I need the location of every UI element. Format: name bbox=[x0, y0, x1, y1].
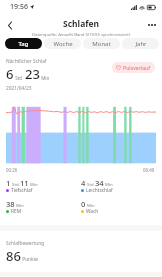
button[interactable]: Tag bbox=[5, 38, 42, 49]
staticText: 38 bbox=[6, 199, 15, 209]
staticText: Std bbox=[11, 181, 19, 187]
staticText: Schlafbewertung bbox=[6, 240, 45, 247]
button[interactable]: More options bbox=[144, 17, 160, 33]
staticText: Min bbox=[15, 202, 24, 208]
staticText: Punkte bbox=[21, 256, 39, 263]
button[interactable]: Back bbox=[2, 17, 18, 33]
staticText: 2021/04/23 bbox=[6, 85, 32, 92]
staticText: 1 bbox=[6, 178, 11, 188]
button[interactable]: Pulsverlauf bbox=[112, 62, 155, 73]
staticText: REM bbox=[11, 208, 22, 215]
staticText: 0 bbox=[81, 199, 86, 209]
staticText: Tag bbox=[18, 40, 29, 48]
staticText: Nächtlicher Schlaf bbox=[6, 58, 47, 65]
staticText: 00:26 bbox=[6, 167, 18, 173]
staticText: Min bbox=[29, 181, 38, 187]
staticText: 06:49 bbox=[143, 167, 155, 173]
button[interactable]: Woche bbox=[44, 38, 81, 49]
staticText: 86 bbox=[6, 247, 21, 265]
staticText: Std bbox=[86, 181, 94, 187]
staticText: Std bbox=[14, 75, 23, 81]
staticText: Monat bbox=[92, 40, 111, 48]
staticText: Wach bbox=[86, 208, 99, 215]
staticText: Min bbox=[86, 202, 95, 208]
staticText: 11 bbox=[20, 178, 29, 188]
staticText: Schlafen bbox=[63, 18, 100, 30]
staticText: Jahr bbox=[135, 40, 147, 48]
staticText: Min bbox=[104, 181, 113, 187]
staticText: Datenquelle: Amazfit Band 5(19:55 synchr… bbox=[32, 32, 131, 38]
button[interactable]: Monat bbox=[83, 38, 120, 49]
button[interactable]: Jahr bbox=[122, 38, 159, 49]
staticText: Woche bbox=[53, 40, 73, 48]
staticText: 4 bbox=[81, 178, 86, 188]
staticText: Tiefschlaf bbox=[11, 187, 33, 194]
staticText: Min bbox=[40, 75, 50, 81]
staticText: 34 bbox=[95, 178, 104, 188]
staticText: Pulsverlauf bbox=[123, 64, 151, 71]
staticText: 6 bbox=[6, 65, 14, 83]
staticText: 19:56 bbox=[10, 2, 28, 12]
staticText: Leichtschlaf bbox=[86, 187, 113, 194]
staticText: 23 bbox=[25, 65, 40, 83]
